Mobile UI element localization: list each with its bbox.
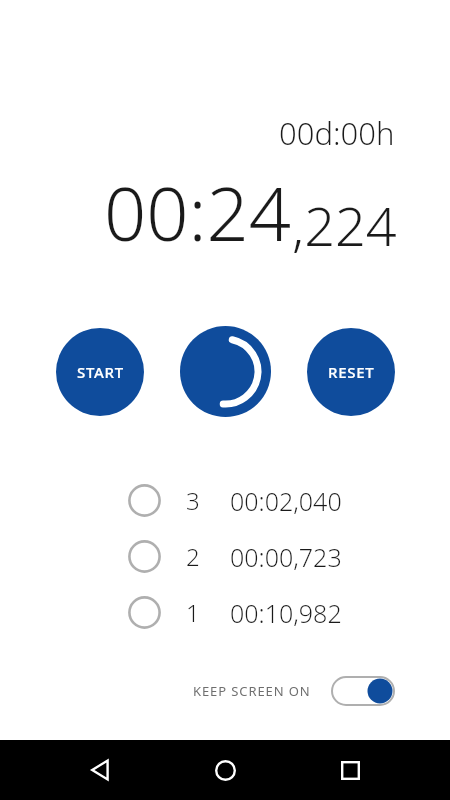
staticText: KEEP SCREEN ON (193, 682, 311, 700)
button[interactable]: RESET (307, 328, 395, 416)
button[interactable]: Home (201, 746, 249, 794)
staticText: 00d:00h (279, 112, 395, 154)
staticText: 3 (186, 484, 200, 517)
button[interactable]: 2 (0, 536, 450, 577)
staticText: 2 (186, 540, 200, 573)
staticText: RESET (328, 362, 375, 382)
button[interactable]: Lap (180, 326, 271, 417)
staticText: 00:24 (104, 162, 292, 263)
button[interactable]: Recents (326, 746, 374, 794)
staticText: 1 (186, 596, 200, 629)
staticText: START (77, 362, 124, 382)
button[interactable]: 1 (0, 592, 450, 633)
staticText: ,224 (292, 188, 397, 262)
staticText: 00:02,040 (230, 484, 342, 518)
button[interactable]: START (56, 328, 144, 416)
button[interactable]: Back (77, 746, 125, 794)
staticText: 00:00,723 (230, 540, 342, 574)
staticText: 00:10,982 (230, 596, 342, 630)
button[interactable]: KEEP SCREEN ON (0, 676, 395, 706)
button[interactable]: 3 (0, 480, 450, 521)
